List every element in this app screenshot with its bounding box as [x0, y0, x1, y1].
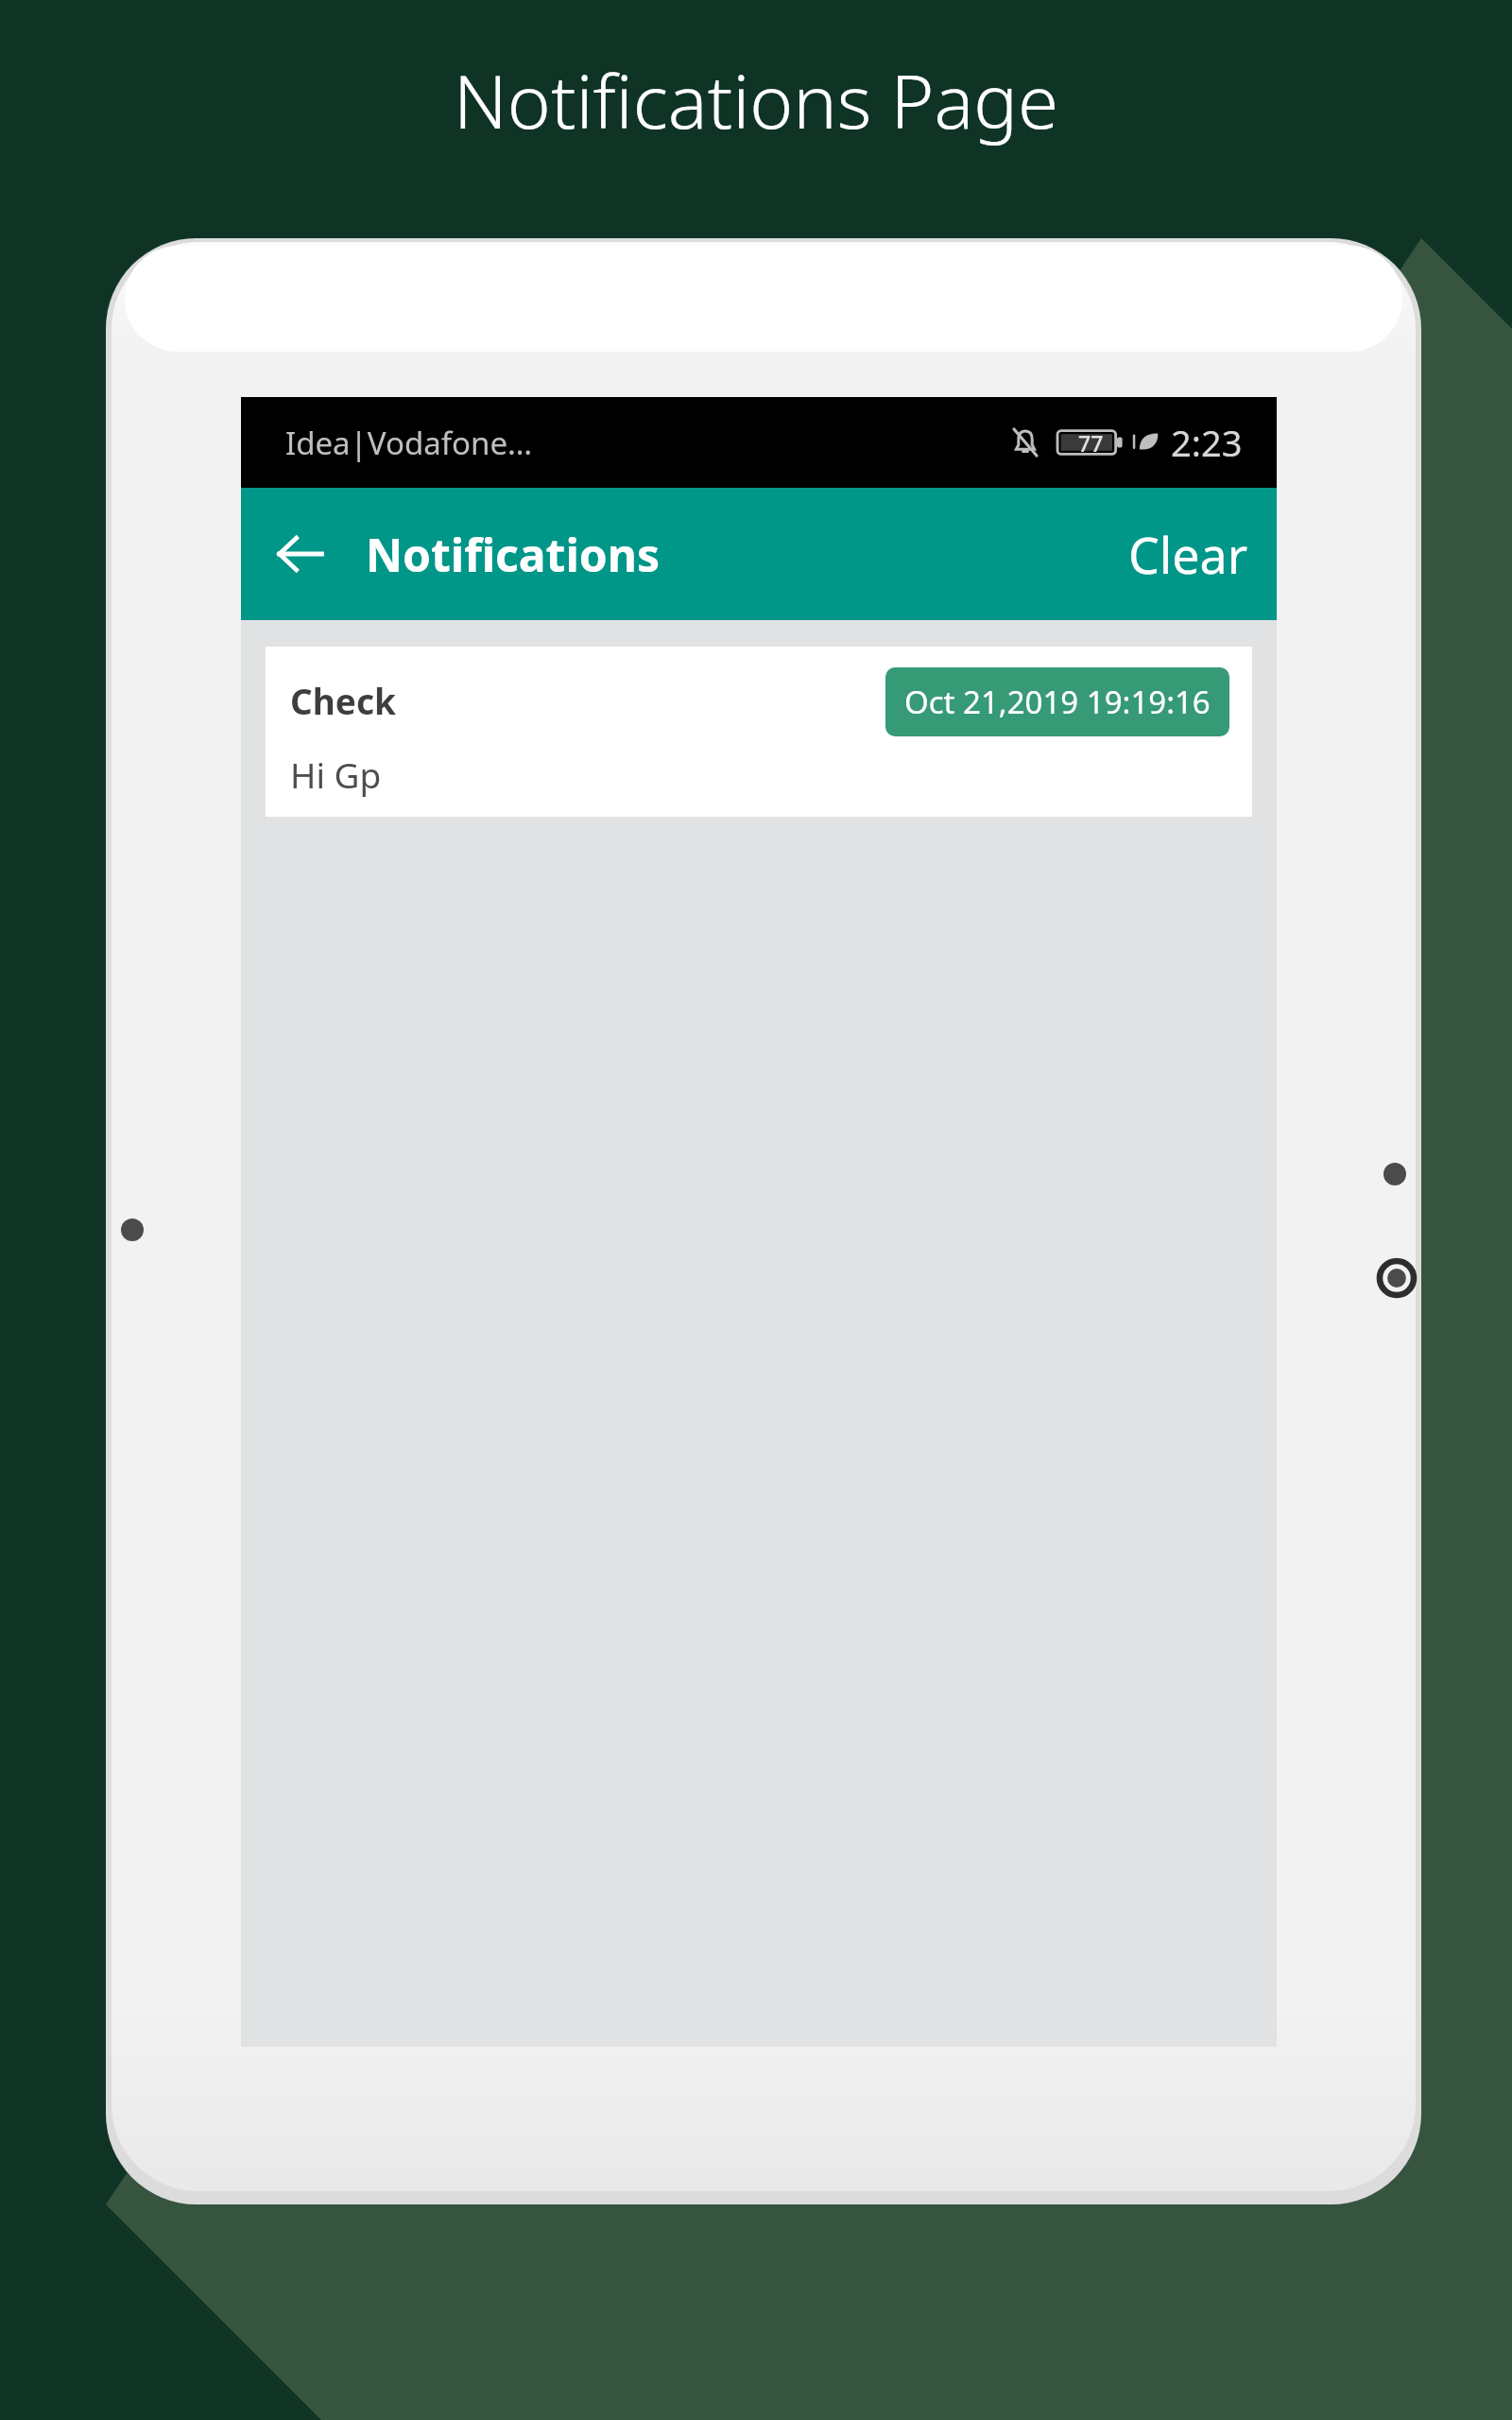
staticText: Notifications Page: [454, 50, 1058, 150]
staticText: Notifications: [366, 524, 661, 585]
staticText: 2:23: [1171, 418, 1243, 467]
button[interactable]: Oct 21,2019 19:19:16: [885, 667, 1229, 736]
staticText: Oct 21,2019 19:19:16: [904, 681, 1211, 723]
staticText: 77: [1078, 428, 1104, 458]
staticText: Idea|Vodafone…: [285, 422, 533, 464]
staticText: Check: [290, 677, 396, 724]
staticText: Hi Gp: [290, 751, 382, 798]
button[interactable]: Check: [266, 647, 1252, 817]
other: Notification light: [113, 1211, 151, 1249]
button[interactable]: Clear: [1100, 500, 1277, 609]
staticText: Clear: [1128, 521, 1248, 588]
button[interactable]: Back: [254, 509, 345, 599]
